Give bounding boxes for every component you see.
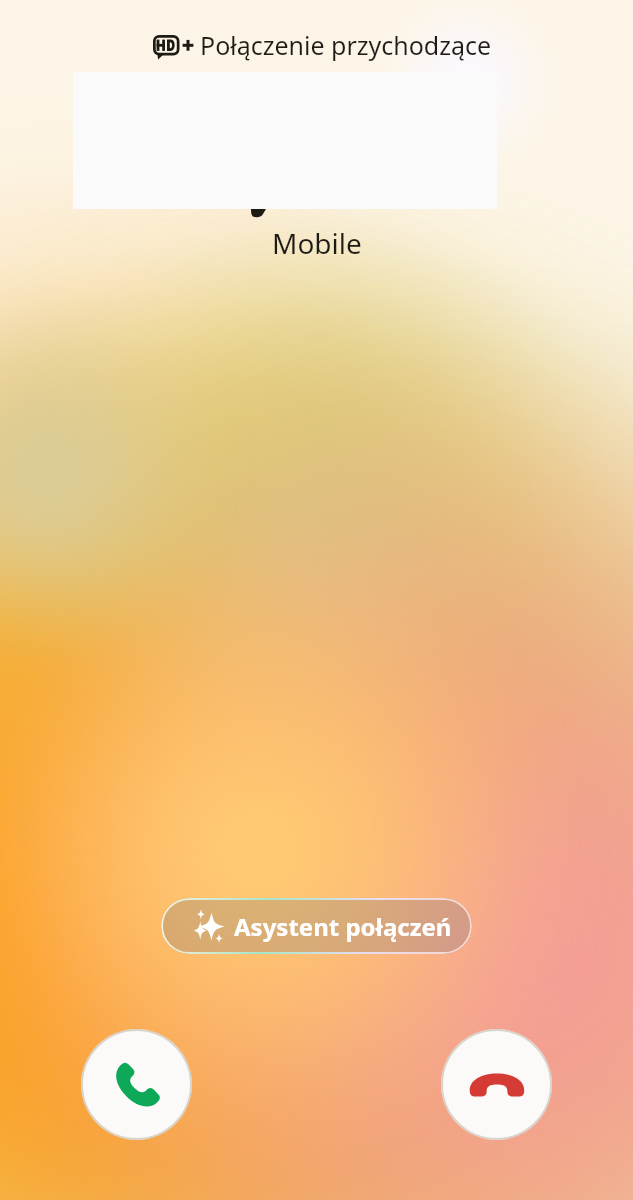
- staticText: Połączenie przychodzące: [200, 28, 492, 62]
- button[interactable]: Decline call: [441, 1029, 552, 1140]
- button[interactable]: Answer call: [81, 1029, 192, 1140]
- button[interactable]: Asystent połączeń: [161, 898, 472, 954]
- staticText: Asystent połączeń: [234, 910, 452, 943]
- staticText: Mobile: [272, 224, 362, 262]
